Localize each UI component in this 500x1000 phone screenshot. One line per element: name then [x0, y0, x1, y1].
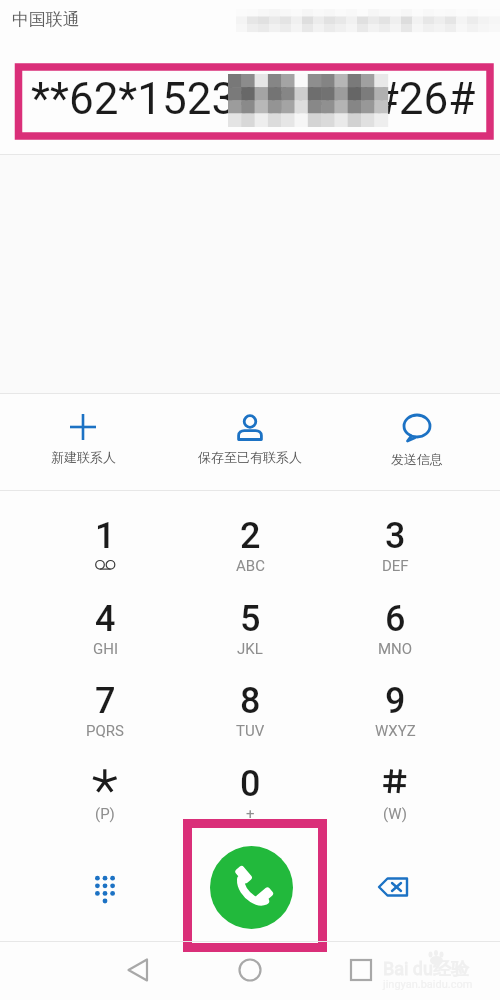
- staticText: 5: [240, 598, 261, 640]
- button[interactable]: Delete: [370, 864, 416, 910]
- staticText: 1: [95, 515, 116, 557]
- staticText: (P): [95, 805, 115, 823]
- staticText: 新建联系人: [51, 449, 116, 465]
- staticText: ABC: [236, 557, 265, 575]
- button[interactable]: (P): [43, 752, 167, 832]
- staticText: (W): [383, 805, 407, 823]
- staticText: **62*1523######26#: [31, 73, 476, 125]
- button[interactable]: 新建联系人: [0, 394, 166, 490]
- staticText: DEF: [382, 557, 409, 575]
- staticText: TUV: [236, 722, 265, 740]
- button[interactable]: 0: [188, 752, 312, 832]
- button[interactable]: 1: [43, 504, 167, 584]
- staticText: 发送信息: [391, 451, 443, 467]
- staticText: 9: [385, 680, 406, 722]
- button[interactable]: 9: [333, 669, 457, 749]
- staticText: GHI: [93, 640, 118, 658]
- staticText: WXYZ: [375, 722, 416, 740]
- staticText: jingyan.baidu.com: [383, 978, 473, 991]
- button[interactable]: Dialpad: [82, 864, 128, 910]
- button[interactable]: 2: [188, 504, 312, 584]
- button[interactable]: Back: [118, 950, 158, 990]
- button[interactable]: 保存至已有联系人: [166, 394, 333, 490]
- button[interactable]: 8: [188, 669, 312, 749]
- button[interactable]: 发送信息: [333, 394, 500, 490]
- staticText: 8: [240, 680, 261, 722]
- staticText: 0: [240, 763, 261, 805]
- button[interactable]: 6: [333, 587, 457, 667]
- button[interactable]: (W): [333, 752, 457, 832]
- staticText: PQRS: [86, 722, 124, 740]
- staticText: MNO: [378, 640, 413, 658]
- staticText: JKL: [237, 640, 263, 658]
- button[interactable]: Home: [230, 950, 270, 990]
- staticText: 6: [385, 598, 406, 640]
- staticText: Bai du经验: [383, 958, 469, 981]
- staticText: 中国联通: [12, 9, 80, 30]
- button[interactable]: 3: [333, 504, 457, 584]
- staticText: 4: [95, 598, 116, 640]
- staticText: 3: [385, 515, 406, 557]
- staticText: 7: [95, 680, 116, 722]
- button[interactable]: Recents: [341, 950, 381, 990]
- staticText: +: [246, 805, 255, 823]
- button[interactable]: 4: [43, 587, 167, 667]
- button[interactable]: 7: [43, 669, 167, 749]
- button[interactable]: Call: [210, 846, 293, 929]
- button[interactable]: 5: [188, 587, 312, 667]
- staticText: 2: [240, 515, 261, 557]
- staticText: 保存至已有联系人: [198, 449, 302, 465]
